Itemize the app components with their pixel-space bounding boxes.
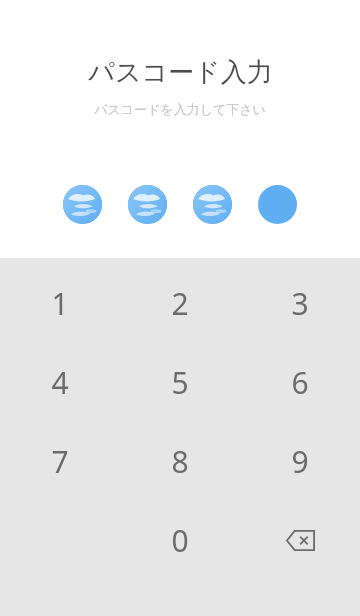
staticText: パスコード入力 xyxy=(88,56,273,89)
button[interactable]: 5 xyxy=(120,343,240,422)
staticText: 9 xyxy=(291,441,309,482)
button[interactable]: 7 xyxy=(0,422,120,501)
staticText: 8 xyxy=(171,441,189,482)
button[interactable]: 6 xyxy=(240,343,360,422)
staticText: 3 xyxy=(291,283,309,324)
staticText: 7 xyxy=(51,441,69,482)
button[interactable]: 8 xyxy=(120,422,240,501)
staticText: 2 xyxy=(171,283,189,324)
staticText: 6 xyxy=(291,362,309,403)
button[interactable]: 3 xyxy=(240,264,360,343)
staticText: 5 xyxy=(171,362,189,403)
staticText: 0 xyxy=(171,520,189,561)
button[interactable]: 9 xyxy=(240,422,360,501)
button[interactable]: Backspace xyxy=(240,501,360,580)
staticText: 4 xyxy=(51,362,69,403)
button[interactable]: 2 xyxy=(120,264,240,343)
staticText: パスコードを入力して下さい xyxy=(94,101,266,117)
button[interactable]: 4 xyxy=(0,343,120,422)
staticText: 1 xyxy=(51,283,69,324)
button[interactable]: 0 xyxy=(120,501,240,580)
button[interactable]: 1 xyxy=(0,264,120,343)
